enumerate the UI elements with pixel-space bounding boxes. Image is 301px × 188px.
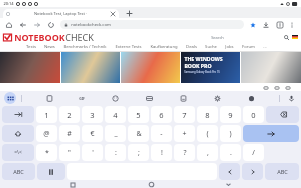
button[interactable]: Translate bbox=[143, 92, 155, 104]
button[interactable]: Forum bbox=[242, 44, 255, 50]
button[interactable]: @ bbox=[36, 125, 57, 142]
button[interactable]: New tab bbox=[125, 9, 134, 18]
button[interactable] bbox=[241, 52, 301, 83]
button[interactable]: Tests bbox=[26, 44, 36, 50]
button[interactable]: Suche bbox=[205, 44, 217, 50]
button[interactable]: / bbox=[243, 144, 264, 161]
button[interactable]: Shift bbox=[2, 125, 34, 142]
button[interactable]: Download bbox=[261, 20, 271, 30]
button[interactable]: ( bbox=[197, 125, 218, 142]
button[interactable]: Search bbox=[211, 34, 279, 41]
button[interactable]: ; bbox=[128, 144, 149, 161]
button[interactable]: Display bbox=[273, 84, 280, 91]
button[interactable]: Notebook Test, Laptop Test · bbox=[6, 9, 116, 18]
staticText: ) bbox=[229, 129, 232, 139]
button[interactable]: Left bbox=[219, 163, 240, 180]
button[interactable] bbox=[61, 52, 120, 83]
button[interactable]: , bbox=[197, 144, 218, 161]
button[interactable]: Stickers bbox=[109, 92, 121, 104]
button[interactable]: Back bbox=[18, 20, 28, 30]
button[interactable]: Forward bbox=[32, 20, 42, 30]
button[interactable]: 7 bbox=[174, 106, 195, 123]
button[interactable]: 5 bbox=[128, 106, 149, 123]
staticText: 8 bbox=[205, 110, 210, 120]
button[interactable]: 4 bbox=[105, 106, 126, 123]
button[interactable]: More options bbox=[287, 20, 297, 30]
button[interactable]: 6 bbox=[151, 106, 172, 123]
button[interactable]: - bbox=[151, 125, 172, 142]
button[interactable]: ABC bbox=[2, 163, 35, 180]
button[interactable]: 8 bbox=[197, 106, 218, 123]
staticText: ABC bbox=[277, 168, 288, 175]
button[interactable]: 2 bbox=[59, 106, 80, 123]
staticText: 7 bbox=[182, 110, 187, 120]
button[interactable]: Home bbox=[146, 181, 156, 188]
button[interactable]: Settings bbox=[211, 92, 223, 104]
button[interactable]: . bbox=[220, 144, 241, 161]
button[interactable]: GIF bbox=[76, 92, 88, 104]
button[interactable]: Compare bbox=[262, 84, 269, 91]
button[interactable]: notebookcheck.com bbox=[64, 20, 240, 29]
button[interactable]: € bbox=[82, 125, 103, 142]
button[interactable]: 9 bbox=[220, 106, 241, 123]
button[interactable]: Symbols bbox=[2, 144, 34, 161]
staticText: News bbox=[44, 44, 55, 50]
staticText: Deals bbox=[186, 44, 197, 50]
button[interactable]: ABC bbox=[265, 163, 299, 180]
button[interactable]: & bbox=[128, 125, 149, 142]
button[interactable]: Voice input bbox=[285, 92, 297, 104]
button[interactable] bbox=[121, 52, 180, 83]
button[interactable]: Clipboard bbox=[43, 92, 55, 104]
button[interactable] bbox=[292, 35, 298, 39]
button[interactable]: + bbox=[174, 125, 195, 142]
button[interactable]: Search bbox=[283, 34, 290, 41]
button[interactable]: ) bbox=[220, 125, 241, 142]
button[interactable]: ! bbox=[151, 144, 172, 161]
button[interactable]: 0 bbox=[243, 106, 264, 123]
button[interactable]: Emoji bbox=[37, 163, 65, 180]
button[interactable] bbox=[0, 52, 60, 83]
button[interactable]: Deals bbox=[186, 44, 197, 50]
button[interactable]: ... bbox=[263, 44, 267, 50]
button[interactable]: Benchmarks / Technik bbox=[63, 44, 107, 50]
staticText: 5 bbox=[136, 110, 141, 120]
staticText: Suche bbox=[205, 44, 217, 50]
staticText: " bbox=[68, 148, 71, 158]
button[interactable]: 1 bbox=[36, 106, 57, 123]
button[interactable]: News bbox=[44, 44, 55, 50]
button[interactable]: : bbox=[105, 144, 126, 161]
button[interactable]: ? bbox=[174, 144, 195, 161]
button[interactable]: Externe Tests bbox=[115, 44, 142, 50]
button[interactable]: # bbox=[59, 125, 80, 142]
staticText: ' bbox=[92, 148, 94, 158]
staticText: 2 bbox=[67, 110, 72, 120]
staticText: Benchmarks / Technik bbox=[63, 44, 107, 50]
button[interactable]: Reload bbox=[46, 20, 56, 30]
button[interactable]: Location bbox=[284, 84, 291, 91]
button[interactable]: Keyboard layouts bbox=[4, 92, 16, 104]
button[interactable]: 3 bbox=[82, 106, 103, 123]
button[interactable]: Kaufberatung bbox=[150, 44, 178, 50]
button[interactable]: Bookmark bbox=[248, 20, 258, 30]
button[interactable]: _ bbox=[105, 125, 126, 142]
button[interactable]: * bbox=[36, 144, 57, 161]
button[interactable]: Close tab bbox=[110, 11, 116, 17]
button[interactable]: Text editing bbox=[177, 92, 189, 104]
button[interactable]: Hide keyboard bbox=[223, 181, 233, 188]
staticText: 20:14 bbox=[3, 1, 14, 6]
staticText: - bbox=[160, 129, 163, 139]
button[interactable]: Profile bbox=[275, 20, 285, 30]
button[interactable]: THE WINDOWS bbox=[181, 52, 240, 83]
button[interactable]: Home bbox=[4, 20, 14, 30]
button[interactable]: Enter bbox=[243, 125, 299, 142]
button[interactable]: Backspace bbox=[266, 106, 299, 123]
button[interactable]: Themes bbox=[245, 92, 257, 104]
staticText: NOTEBOOK bbox=[14, 31, 65, 43]
button[interactable]: Tab bbox=[2, 106, 34, 123]
button[interactable]: " bbox=[59, 144, 80, 161]
button[interactable]: ' bbox=[82, 144, 103, 161]
button[interactable]: Right bbox=[242, 163, 263, 180]
button[interactable]: Jobs bbox=[225, 44, 234, 50]
button[interactable]: Recents bbox=[68, 181, 78, 188]
